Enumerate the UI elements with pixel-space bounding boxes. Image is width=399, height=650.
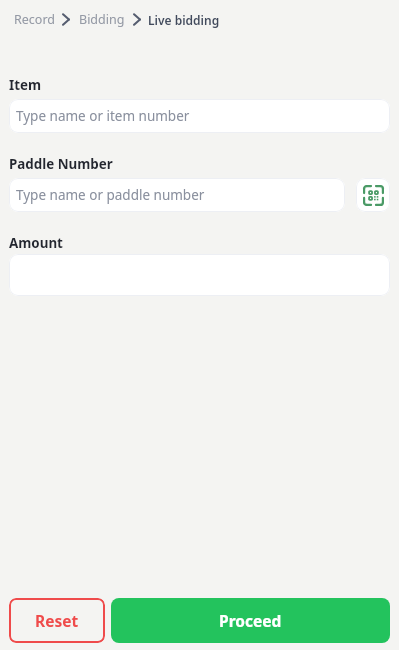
staticText: Type name or paddle number	[16, 186, 205, 204]
staticText: Type name or item number	[16, 107, 190, 125]
staticText: Paddle Number	[9, 155, 113, 173]
button[interactable]: Type name or paddle number	[9, 178, 345, 212]
staticText: Item	[9, 76, 42, 94]
staticText: Amount	[9, 234, 63, 252]
staticText: Reset	[35, 610, 79, 631]
button[interactable]: Live bidding	[148, 12, 220, 28]
button[interactable]: Reset	[9, 598, 105, 643]
button[interactable]	[9, 254, 390, 296]
button[interactable]: Bidding	[79, 11, 125, 28]
staticText: Proceed	[219, 610, 282, 631]
button[interactable]: Scan QR code	[356, 178, 390, 212]
button[interactable]: Type name or item number	[9, 99, 390, 133]
button[interactable]: Proceed	[111, 598, 390, 643]
button[interactable]: Record	[14, 11, 55, 28]
